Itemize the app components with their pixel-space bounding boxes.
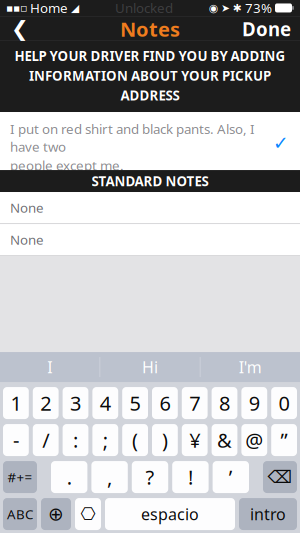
button[interactable]: Dictation: [75, 498, 101, 530]
staticText: ABC: [7, 505, 33, 523]
button[interactable]: 9: [241, 387, 267, 419]
staticText: ❮: [11, 17, 29, 41]
button[interactable]: espacio: [105, 498, 235, 530]
button[interactable]: @: [241, 424, 267, 456]
staticText: ◉ ➤ ✱: [209, 2, 242, 14]
button[interactable]: Done: [233, 17, 300, 41]
staticText: &: [217, 427, 232, 453]
button[interactable]: Symbols: [3, 461, 37, 493]
button[interactable]: .: [51, 461, 87, 493]
staticText: /: [42, 427, 49, 453]
staticText: Notes: [120, 16, 180, 42]
button[interactable]: ): [152, 424, 178, 456]
staticText: 6: [159, 390, 170, 416]
button[interactable]: 3: [63, 387, 88, 419]
staticText: 73%: [242, 0, 275, 17]
staticText: espacio: [141, 503, 199, 525]
staticText: Done: [242, 16, 291, 41]
staticText: :: [73, 427, 78, 453]
button[interactable]: 6: [152, 387, 178, 419]
staticText: 4: [100, 390, 111, 416]
staticText: ¥: [189, 427, 200, 453]
button[interactable]: Next keyboard: [41, 498, 71, 530]
staticText: ⊕: [48, 503, 64, 525]
button[interactable]: Confirm note: [270, 134, 292, 152]
staticText: I'm: [239, 356, 262, 378]
button[interactable]: Back: [0, 17, 40, 41]
button[interactable]: Letters: [3, 498, 37, 530]
staticText: 3: [70, 390, 81, 416]
staticText: I: [47, 356, 52, 378]
staticText: @: [245, 427, 263, 453]
staticText: 0: [279, 390, 290, 416]
button[interactable]: 1: [3, 387, 29, 419]
staticText: Home: [27, 0, 71, 17]
button[interactable]: :: [63, 424, 88, 456]
button[interactable]: 8: [212, 387, 237, 419]
staticText: ): [162, 427, 168, 453]
staticText: ;: [103, 427, 108, 453]
staticText: None: [10, 231, 44, 248]
button[interactable]: ¥: [182, 424, 208, 456]
staticText: ▪▪▫: [6, 2, 27, 14]
staticText: ’: [229, 464, 233, 490]
button[interactable]: ;: [92, 424, 118, 456]
button[interactable]: intro: [239, 498, 297, 530]
button[interactable]: /: [33, 424, 59, 456]
staticText: ◢: [71, 2, 79, 14]
staticText: STANDARD NOTES: [91, 172, 208, 190]
button[interactable]: I'm: [201, 352, 300, 382]
staticText: 1: [10, 390, 21, 416]
staticText: ✓: [273, 132, 289, 154]
button[interactable]: 4: [92, 387, 118, 419]
staticText: (: [132, 427, 138, 453]
staticText: 5: [130, 390, 141, 416]
button[interactable]: Hi: [100, 352, 200, 382]
staticText: INFORMATION ABOUT YOUR PICKUP: [29, 67, 271, 84]
staticText: .: [67, 464, 72, 490]
button[interactable]: 0: [271, 387, 297, 419]
staticText: ”: [281, 427, 288, 453]
button[interactable]: 5: [122, 387, 148, 419]
staticText: #+=: [7, 468, 32, 486]
staticText: ?: [145, 464, 154, 490]
staticText: Hi: [142, 356, 158, 378]
button[interactable]: ,: [91, 461, 128, 493]
button[interactable]: None: [0, 224, 300, 255]
staticText: 8: [219, 390, 230, 416]
staticText: I put on red shirt and black pants. Also…: [10, 120, 255, 155]
staticText: HELP YOUR DRIVER FIND YOU BY ADDING: [14, 47, 285, 65]
staticText: -: [13, 427, 19, 453]
staticText: !: [188, 464, 193, 490]
button[interactable]: (: [122, 424, 148, 456]
staticText: ⌫: [267, 467, 292, 487]
staticText: None: [10, 199, 44, 216]
button[interactable]: -: [3, 424, 29, 456]
button[interactable]: !: [172, 461, 209, 493]
button[interactable]: ’: [213, 461, 249, 493]
button[interactable]: ”: [271, 424, 297, 456]
staticText: ADDRESS: [120, 86, 179, 104]
button[interactable]: I: [0, 352, 99, 382]
button[interactable]: ?: [132, 461, 168, 493]
button[interactable]: 2: [33, 387, 59, 419]
staticText: people except me.: [10, 156, 124, 174]
staticText: 7: [189, 390, 200, 416]
staticText: ,: [107, 464, 112, 490]
staticText: intro: [250, 503, 286, 525]
button[interactable]: &: [212, 424, 237, 456]
staticText: 2: [40, 390, 51, 416]
staticText: 9: [249, 390, 260, 416]
button[interactable]: 7: [182, 387, 208, 419]
button[interactable]: Delete: [263, 461, 297, 493]
staticText: Unlocked: [115, 0, 173, 17]
staticText: ⎔: [80, 504, 95, 524]
button[interactable]: None: [0, 192, 300, 223]
